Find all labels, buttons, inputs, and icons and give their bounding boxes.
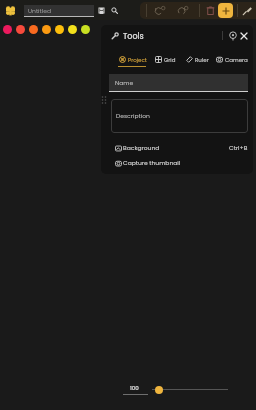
button[interactable] <box>3 25 12 34</box>
button[interactable]: Description <box>111 99 248 133</box>
button[interactable] <box>81 25 90 34</box>
button[interactable]: Close <box>239 31 249 41</box>
button[interactable] <box>42 25 51 34</box>
staticText: Untitled <box>28 7 51 15</box>
staticText: Name <box>115 79 134 87</box>
staticText: Tools <box>123 31 144 42</box>
button[interactable]: Project <box>119 53 253 66</box>
button[interactable] <box>55 25 64 34</box>
button[interactable]: Redo <box>177 5 188 16</box>
staticText: Capture thumbnail <box>123 159 181 167</box>
button[interactable]: Save <box>96 3 107 17</box>
button[interactable] <box>16 25 25 34</box>
button[interactable]: Capture thumbnail <box>111 156 249 170</box>
button[interactable]: Camera <box>216 53 253 66</box>
staticText: Description <box>116 112 150 120</box>
staticText: Ctrl+B <box>229 144 248 152</box>
button[interactable]: Grid <box>155 53 253 66</box>
staticText: Project <box>128 56 147 64</box>
staticText: Background <box>123 144 160 152</box>
button[interactable]: Background <box>111 141 249 155</box>
button[interactable]: Ruler <box>186 53 253 66</box>
button[interactable] <box>29 25 38 34</box>
button[interactable]: Search <box>109 3 120 17</box>
button[interactable]: Name <box>109 74 248 92</box>
button[interactable]: Brush <box>242 5 253 16</box>
button[interactable]: Undo <box>154 5 165 16</box>
staticText: Ruler <box>195 56 209 64</box>
button[interactable]: Zoom slider <box>155 386 163 394</box>
button[interactable]: App logo <box>3 4 17 18</box>
button[interactable]: Delete <box>205 5 216 16</box>
staticText: Grid <box>164 56 176 64</box>
staticText: 100 <box>130 384 139 392</box>
button[interactable]: Add <box>218 3 233 18</box>
button[interactable]: Untitled <box>24 5 94 16</box>
staticText: Camera <box>225 56 248 64</box>
button[interactable] <box>68 25 77 34</box>
button[interactable]: Pin <box>228 31 238 41</box>
button[interactable]: Tools <box>111 29 253 43</box>
